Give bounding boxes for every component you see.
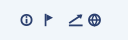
button[interactable]: Globe — [88, 13, 101, 26]
button[interactable]: Flag — [44, 13, 53, 26]
button[interactable]: Info — [21, 13, 32, 26]
button[interactable]: Send — [68, 13, 84, 26]
